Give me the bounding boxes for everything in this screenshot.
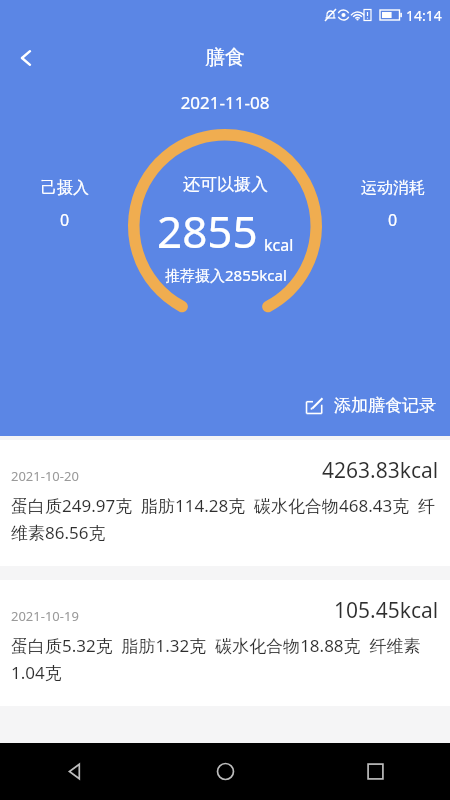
staticText: 膳食 (205, 45, 245, 70)
staticText: 105.45kcal (334, 596, 439, 625)
staticText: 2855 (157, 201, 258, 261)
staticText: 己摄入 (41, 178, 89, 198)
staticText: 蛋白质5.32克 脂肪1.32克 碳水化合物18.88克 纤维素1.04克 (11, 634, 439, 684)
button[interactable]: Home (150, 743, 300, 800)
staticText: 运动消耗 (361, 178, 425, 198)
button[interactable]: 添加膳食记录 (291, 389, 450, 422)
staticText: 2021-10-20 (11, 467, 79, 485)
staticText: 4263.83kcal (322, 456, 439, 485)
button[interactable]: 2021-10-20 (0, 440, 450, 566)
staticText: 0 (388, 209, 398, 231)
staticText: kcal (264, 234, 294, 256)
staticText: 14:14 (406, 6, 442, 25)
staticText: 0 (60, 209, 70, 231)
staticText: 还可以摄入 (183, 174, 268, 195)
button[interactable]: 2021-10-19 (0, 580, 450, 706)
staticText: 2021-10-19 (11, 607, 79, 625)
button[interactable]: Recent apps (300, 743, 450, 800)
staticText: 添加膳食记录 (334, 395, 436, 416)
staticText: 蛋白质249.97克 脂肪114.28克 碳水化合物468.43克 纤维素86.… (11, 494, 439, 544)
staticText: 推荐摄入2855kcal (165, 265, 287, 285)
button[interactable]: Back (0, 743, 150, 800)
staticText: 2021-11-08 (0, 91, 450, 114)
button[interactable]: Back (0, 32, 52, 84)
